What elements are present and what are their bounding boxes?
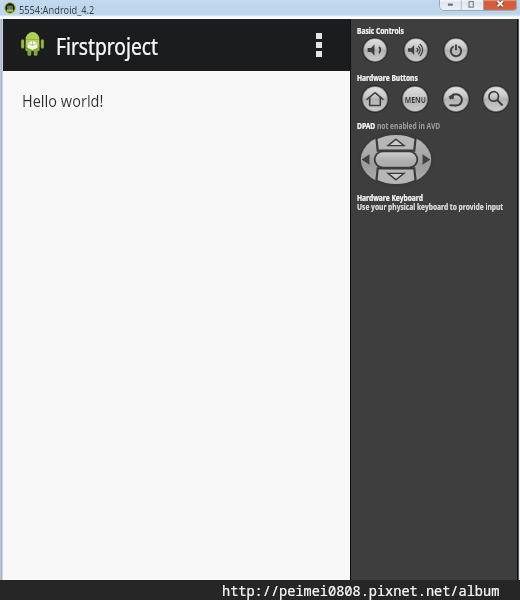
button[interactable]: Home	[361, 85, 389, 113]
button[interactable]: Volume down	[362, 37, 388, 63]
staticText: 5554:Android_4.2	[19, 2, 95, 17]
button[interactable]: Back	[442, 85, 470, 113]
staticText: Firstproject	[56, 29, 158, 62]
staticText: DPAD	[357, 119, 375, 131]
staticText: http://peimei0808.pixnet.net/album	[222, 581, 500, 600]
staticText: Use your physical keyboard to provide in…	[357, 200, 503, 212]
staticText: Basic Controls	[357, 24, 404, 36]
staticText: Hardware Buttons	[357, 71, 418, 83]
staticText: MENU	[405, 94, 426, 105]
button[interactable]: D-pad	[359, 132, 433, 187]
button[interactable]: Minimize	[439, 0, 462, 11]
button[interactable]: Maximize	[462, 0, 482, 11]
button[interactable]: Menu	[401, 85, 429, 113]
staticText: Hardware Keyboard	[357, 191, 424, 203]
button[interactable]: Search	[482, 85, 510, 113]
staticText: not enabled in AVD	[377, 119, 441, 131]
button[interactable]: Close	[482, 0, 517, 11]
button[interactable]: Power	[443, 37, 469, 63]
button[interactable]: Volume up	[403, 37, 429, 63]
button[interactable]: More options	[298, 19, 340, 71]
staticText: Hello world!	[22, 89, 104, 112]
